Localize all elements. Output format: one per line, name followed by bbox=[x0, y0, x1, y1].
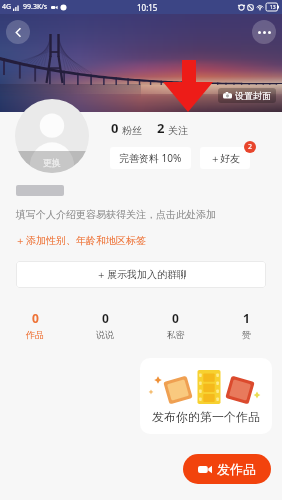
staticText: 2 bbox=[248, 142, 253, 152]
button[interactable]: 发布你的第一个作品 bbox=[140, 358, 272, 434]
staticText: 99.3K/s bbox=[23, 2, 48, 12]
staticText: ＋ bbox=[210, 152, 220, 165]
staticText: 添加性别、年龄和地区标签 bbox=[26, 234, 146, 247]
staticText: 说说 bbox=[96, 329, 114, 340]
button[interactable]: 1 bbox=[211, 304, 282, 346]
staticText: ＋ bbox=[15, 234, 25, 247]
button[interactable]: ＋ bbox=[0, 234, 282, 247]
button[interactable]: 完善资料 10% bbox=[110, 147, 191, 169]
staticText: 0 bbox=[172, 310, 179, 326]
staticText: 私密 bbox=[167, 329, 185, 340]
staticText: 填写个人介绍更容易获得关注，点击此处添加 bbox=[16, 208, 216, 221]
button[interactable]: More options bbox=[252, 20, 276, 44]
staticText: 0 bbox=[102, 310, 109, 326]
button[interactable]: 0 bbox=[140, 304, 211, 346]
staticText: ＋ bbox=[96, 268, 106, 281]
staticText: 好友 bbox=[220, 152, 240, 165]
staticText: 关注 bbox=[168, 124, 188, 137]
staticText: 完善资料 10% bbox=[119, 151, 182, 165]
staticText: 4G bbox=[2, 2, 12, 12]
staticText: 展示我加入的群聊 bbox=[107, 268, 187, 281]
button[interactable]: 0 bbox=[70, 304, 140, 346]
button[interactable]: 设置封面 bbox=[218, 88, 276, 103]
staticText: 13 bbox=[270, 4, 276, 11]
staticText: 发作品 bbox=[217, 461, 256, 477]
button[interactable]: 0 bbox=[0, 304, 70, 346]
button[interactable]: 填写个人介绍更容易获得关注，点击此处添加 bbox=[0, 208, 282, 221]
button[interactable]: 发作品 bbox=[183, 454, 271, 484]
button[interactable]: ＋ bbox=[200, 147, 250, 169]
staticText: 0 bbox=[111, 119, 119, 137]
button[interactable]: Change avatar bbox=[15, 99, 89, 173]
staticText: 1 bbox=[243, 310, 250, 326]
staticText: 粉丝 bbox=[122, 124, 142, 137]
button[interactable]: Back bbox=[6, 20, 30, 44]
staticText: 10:15 bbox=[137, 2, 158, 13]
staticText: 2 bbox=[157, 119, 165, 137]
button[interactable]: ＋ bbox=[16, 261, 266, 288]
staticText: 设置封面 bbox=[235, 90, 271, 101]
staticText: 更换 bbox=[43, 157, 61, 168]
staticText: 0 bbox=[32, 310, 39, 326]
staticText: 作品 bbox=[26, 329, 44, 340]
staticText: 赞 bbox=[242, 329, 251, 340]
staticText: 发布你的第一个作品 bbox=[152, 409, 260, 424]
